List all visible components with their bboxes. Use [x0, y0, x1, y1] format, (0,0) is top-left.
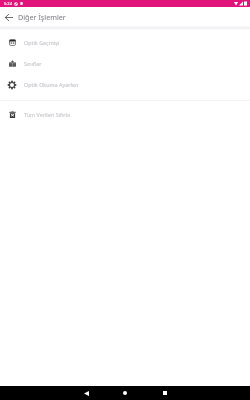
staticText: Optik Geçmişi [24, 39, 60, 46]
staticText: Optik Okuma Ayarları [24, 81, 79, 88]
button[interactable]: Back [0, 7, 18, 26]
button[interactable]: Recent apps [158, 386, 172, 400]
button[interactable]: Home [118, 386, 132, 400]
button[interactable]: Optik Okuma Ayarları [0, 74, 250, 95]
button[interactable]: Optik Geçmişi [0, 32, 250, 53]
staticText: Tüm Verileri Sıfırla [24, 111, 70, 118]
staticText: 6:24 [4, 1, 12, 6]
staticText: Sınıflar [24, 60, 42, 67]
staticText: Diğer İşlemler [18, 12, 66, 22]
button[interactable]: Tüm Verileri Sıfırla [0, 104, 250, 125]
button[interactable]: Sınıflar [0, 53, 250, 74]
button[interactable]: Back [79, 386, 93, 400]
